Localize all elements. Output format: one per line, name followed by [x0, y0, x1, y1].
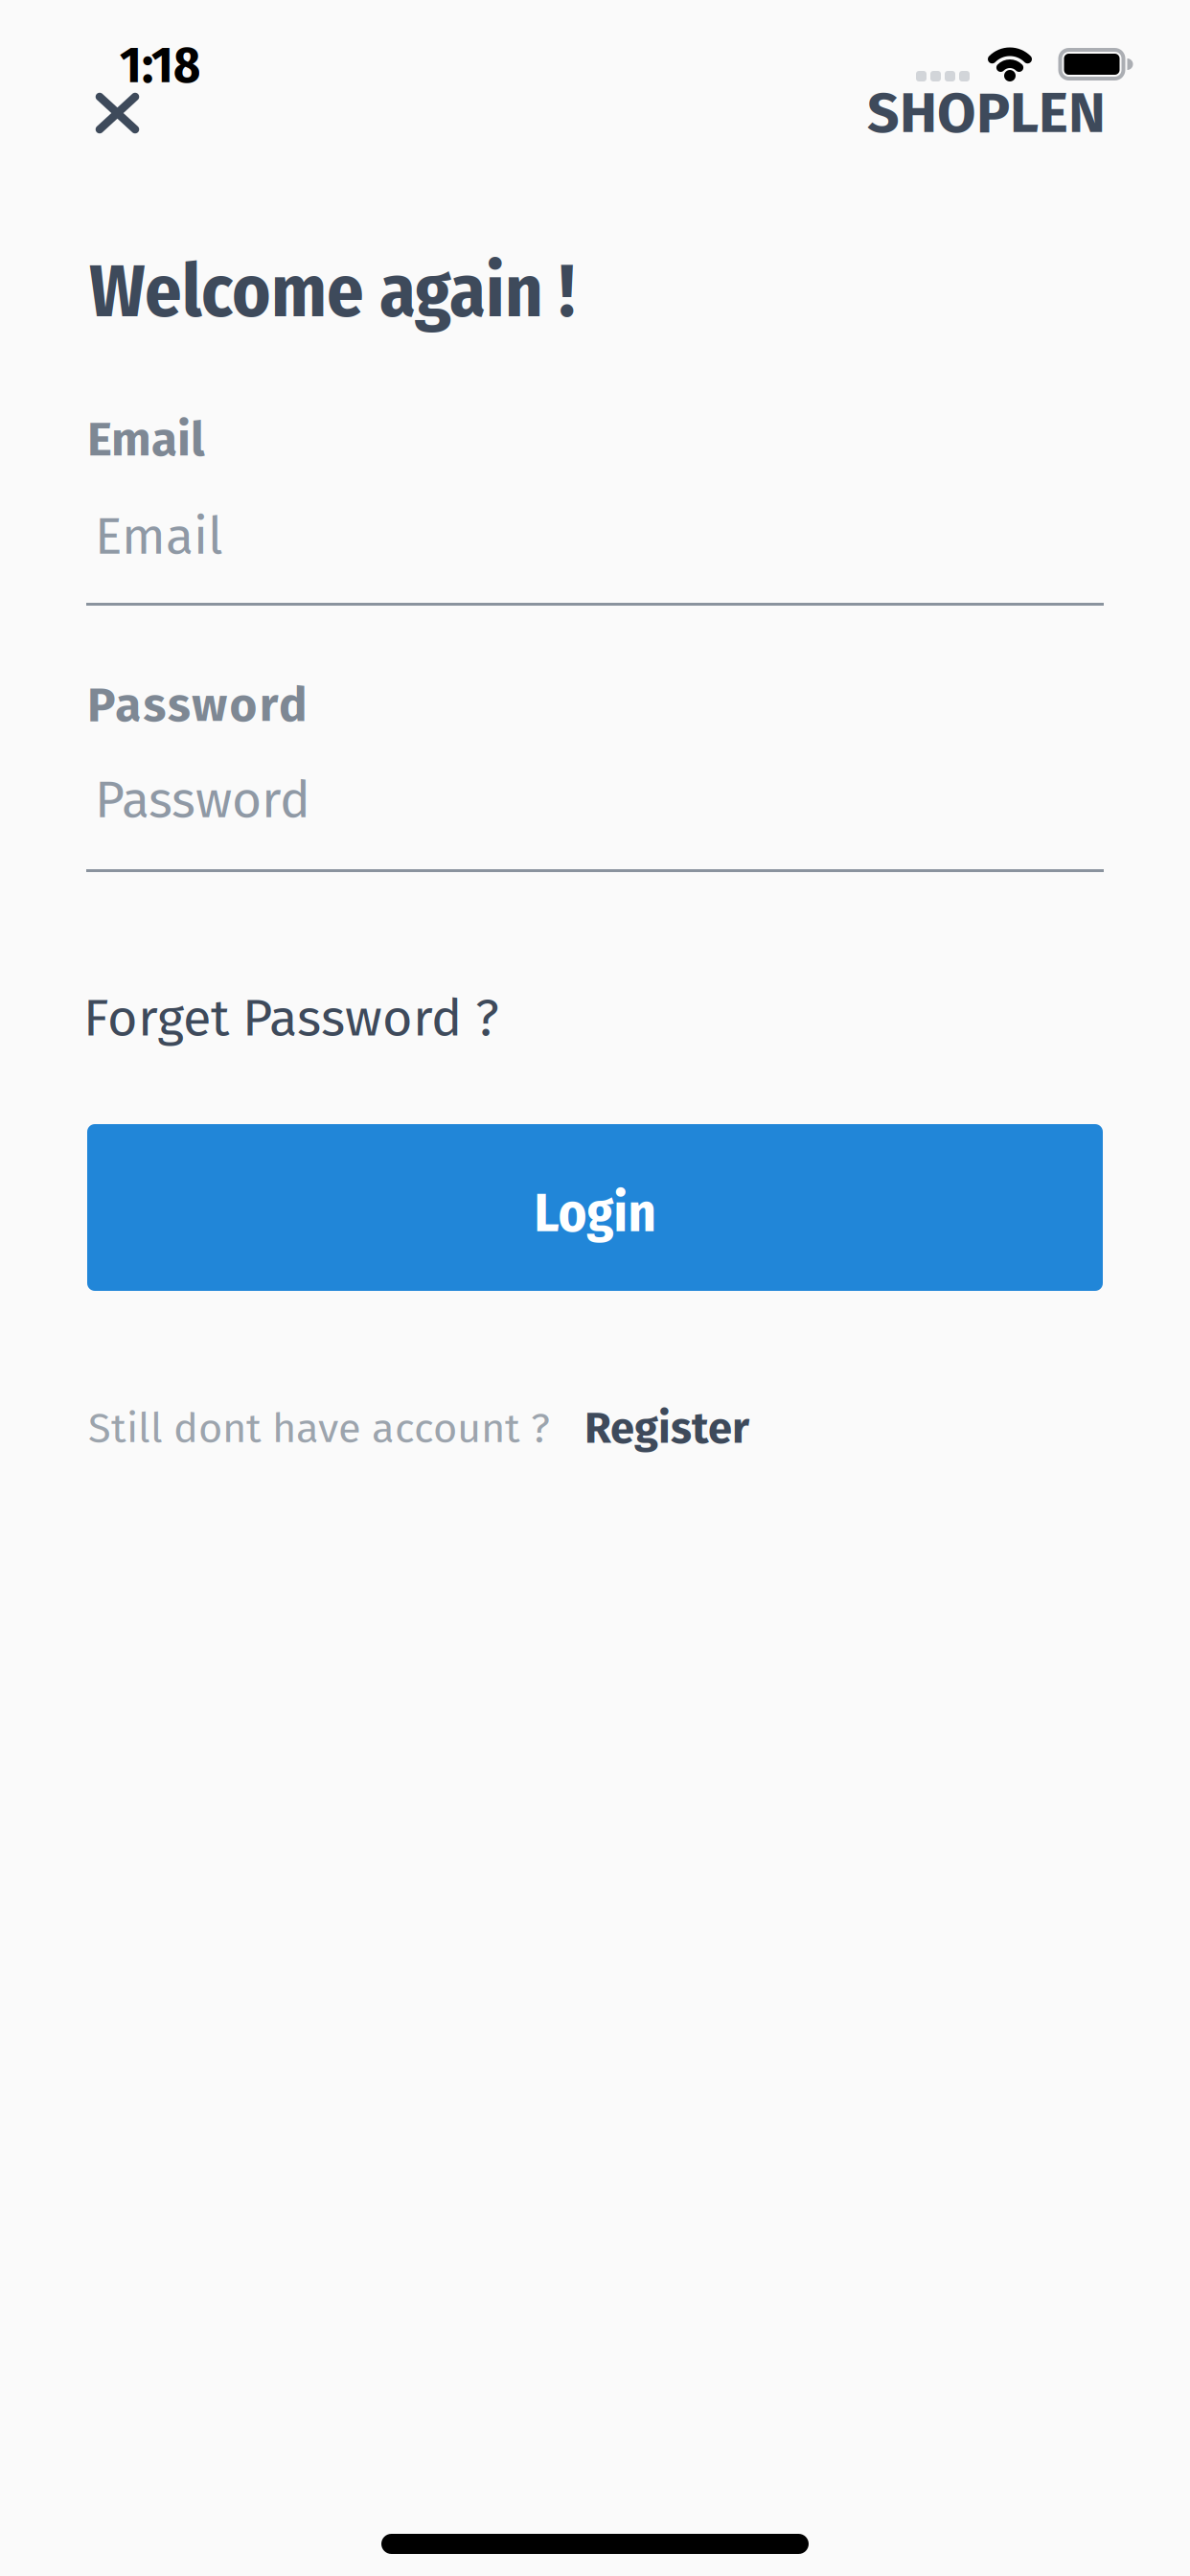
- staticText: Email: [95, 506, 223, 567]
- button[interactable]: Login: [87, 1124, 1103, 1291]
- button[interactable]: [97, 94, 138, 132]
- staticText: SHOPLEN: [867, 80, 1106, 147]
- staticText: Password: [95, 770, 310, 831]
- staticText: Login: [534, 1181, 656, 1245]
- button[interactable]: Forget Password ?: [83, 987, 499, 1049]
- staticText: Welcome again !: [89, 248, 575, 336]
- button[interactable]: Register: [584, 1402, 749, 1454]
- staticText: Password: [87, 677, 308, 733]
- staticText: Email: [87, 411, 205, 468]
- staticText: Register: [584, 1402, 749, 1454]
- staticText: 1:18: [120, 34, 200, 96]
- staticText: Forget Password ?: [83, 987, 499, 1049]
- staticText: Still dont have account ?: [88, 1403, 550, 1453]
